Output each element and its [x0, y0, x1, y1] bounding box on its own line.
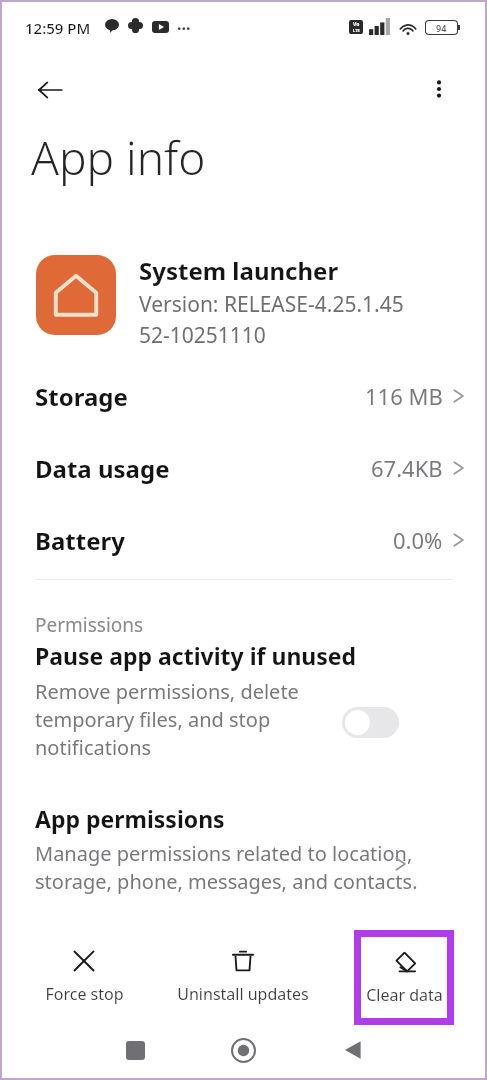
- button[interactable]: Pause app activity toggle: [342, 707, 399, 738]
- button[interactable]: Clear data: [361, 937, 447, 1018]
- button[interactable]: App permissions: [0, 803, 487, 923]
- button[interactable]: Recents: [100, 1030, 170, 1080]
- button[interactable]: Data usage: [0, 437, 487, 499]
- staticText: Manage permissions related to location, …: [35, 840, 425, 895]
- button[interactable]: Back: [22, 62, 78, 118]
- staticText: Clear data: [366, 984, 443, 1006]
- button[interactable]: Back: [318, 1030, 388, 1080]
- staticText: ...: [177, 13, 191, 35]
- staticText: Force stop: [45, 983, 124, 1005]
- staticText: Pause app activity if unused: [35, 640, 357, 671]
- staticText: App permissions: [35, 803, 225, 834]
- staticText: App info: [31, 126, 206, 189]
- button[interactable]: More options: [412, 62, 466, 116]
- staticText: System launcher: [139, 254, 339, 287]
- staticText: Permissions: [35, 612, 144, 638]
- button[interactable]: Pause app activity if unused: [0, 640, 487, 800]
- staticText: 0.0%: [393, 525, 443, 555]
- staticText: Data usage: [35, 452, 170, 485]
- staticText: Vo: [353, 21, 360, 28]
- staticText: Battery: [35, 524, 125, 557]
- button[interactable]: Storage: [0, 365, 487, 427]
- button[interactable]: Battery: [0, 509, 487, 571]
- staticText: Version: RELEASE-4.25.1.45 52-10251110: [139, 290, 404, 349]
- staticText: 94: [436, 22, 447, 34]
- staticText: Storage: [35, 380, 128, 413]
- staticText: Uninstall updates: [177, 983, 309, 1005]
- staticText: 116 MB: [365, 381, 443, 411]
- staticText: LTE: [353, 28, 360, 33]
- staticText: 67.4KB: [371, 453, 443, 483]
- staticText: Remove permissions, delete temporary fil…: [35, 678, 365, 761]
- button[interactable]: Force stop: [22, 933, 146, 1019]
- button[interactable]: Home: [208, 1030, 278, 1080]
- button[interactable]: Uninstall updates: [168, 933, 318, 1019]
- staticText: 12:59 PM: [25, 18, 91, 38]
